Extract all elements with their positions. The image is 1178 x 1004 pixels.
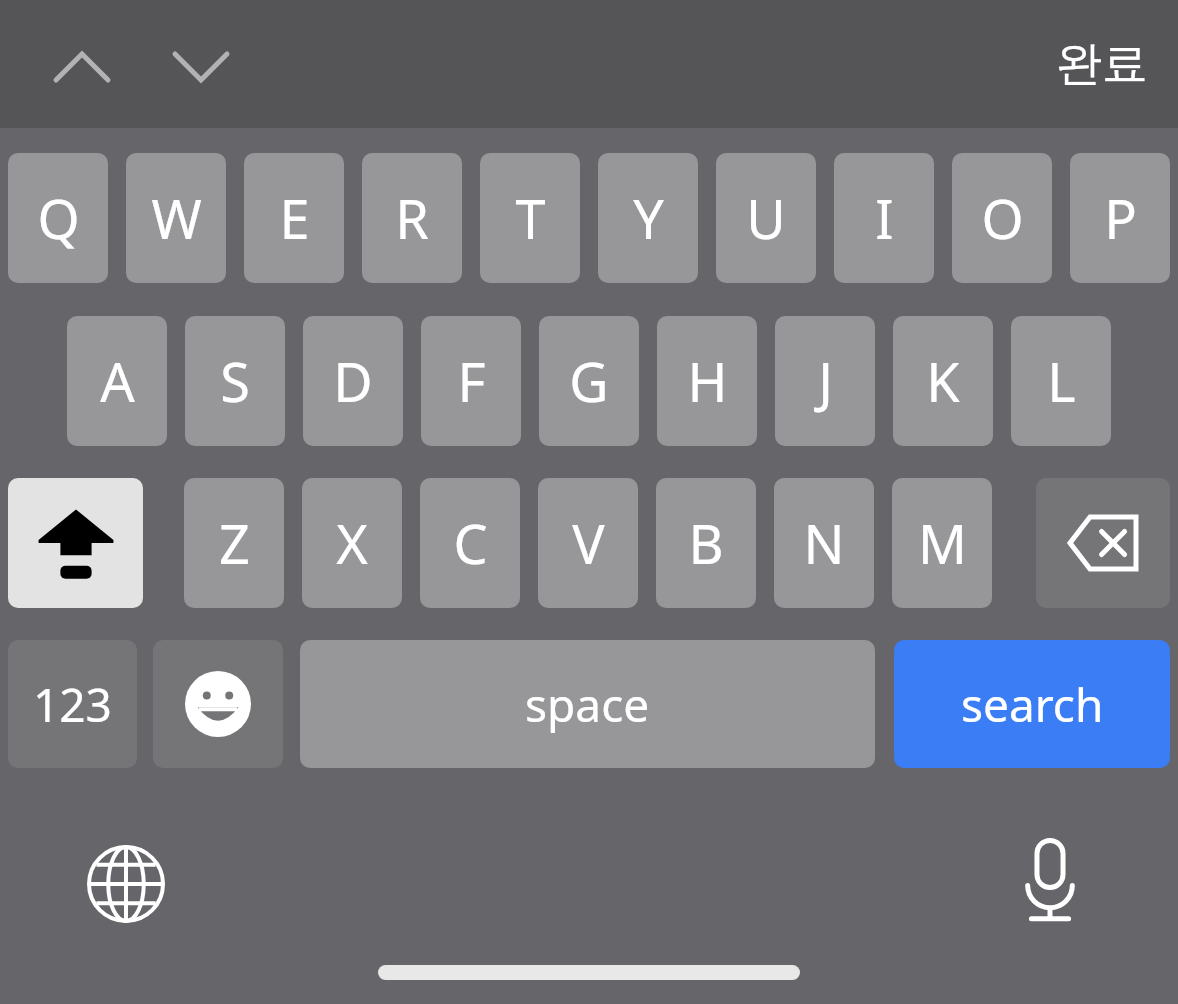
button[interactable]: T — [480, 153, 580, 283]
button[interactable]: H — [657, 316, 757, 446]
button[interactable]: I — [834, 153, 934, 283]
staticText: R — [395, 181, 429, 255]
staticText: C — [453, 506, 488, 580]
button[interactable]: P — [1070, 153, 1170, 283]
button[interactable]: 123 — [8, 640, 137, 768]
staticText: K — [926, 344, 960, 418]
button[interactable]: J — [775, 316, 875, 446]
button[interactable]: 완료 — [1056, 35, 1148, 93]
staticText: D — [333, 344, 373, 418]
button[interactable]: Next field — [165, 31, 237, 103]
button[interactable]: G — [539, 316, 639, 446]
staticText: Z — [219, 506, 250, 580]
button[interactable]: R — [362, 153, 462, 283]
staticText: G — [569, 344, 609, 418]
staticText: I — [875, 181, 894, 255]
button[interactable]: Emoji — [153, 640, 283, 768]
staticText: 123 — [33, 673, 112, 736]
button[interactable]: N — [774, 478, 874, 608]
button[interactable]: X — [302, 478, 402, 608]
staticText: S — [220, 344, 250, 418]
button[interactable]: Caps lock — [8, 478, 143, 608]
staticText: M — [918, 506, 967, 580]
button[interactable]: M — [892, 478, 992, 608]
staticText: V — [572, 506, 605, 580]
button[interactable]: V — [538, 478, 638, 608]
staticText: Y — [633, 181, 664, 255]
button[interactable]: K — [893, 316, 993, 446]
button[interactable]: Dictation — [1006, 836, 1094, 924]
button[interactable]: Z — [184, 478, 284, 608]
staticText: space — [525, 673, 650, 736]
button[interactable]: C — [420, 478, 520, 608]
staticText: P — [1104, 181, 1137, 255]
button[interactable]: space — [300, 640, 875, 768]
button[interactable]: Backspace — [1036, 478, 1170, 608]
button[interactable]: Change keyboard — [82, 840, 170, 928]
staticText: T — [515, 181, 546, 255]
button[interactable]: Y — [598, 153, 698, 283]
staticText: U — [746, 181, 786, 255]
button[interactable]: L — [1011, 316, 1111, 446]
button[interactable]: Previous field — [46, 31, 118, 103]
staticText: L — [1047, 344, 1076, 418]
button[interactable]: A — [67, 316, 167, 446]
button[interactable]: U — [716, 153, 816, 283]
staticText: A — [100, 344, 135, 418]
staticText: B — [688, 506, 724, 580]
button[interactable]: B — [656, 478, 756, 608]
button[interactable]: S — [185, 316, 285, 446]
staticText: 완료 — [1056, 35, 1148, 93]
button[interactable]: D — [303, 316, 403, 446]
button[interactable]: E — [244, 153, 344, 283]
button[interactable]: F — [421, 316, 521, 446]
staticText: X — [336, 506, 368, 580]
staticText: O — [981, 181, 1024, 255]
staticText: F — [457, 344, 486, 418]
button[interactable]: O — [952, 153, 1052, 283]
staticText: H — [687, 344, 728, 418]
staticText: E — [279, 181, 310, 255]
staticText: N — [803, 506, 845, 580]
button[interactable]: Q — [8, 153, 108, 283]
staticText: W — [151, 181, 202, 255]
button[interactable]: W — [126, 153, 226, 283]
staticText: J — [818, 344, 833, 418]
button[interactable]: search — [894, 640, 1170, 768]
staticText: search — [961, 673, 1104, 736]
staticText: Q — [37, 181, 80, 255]
